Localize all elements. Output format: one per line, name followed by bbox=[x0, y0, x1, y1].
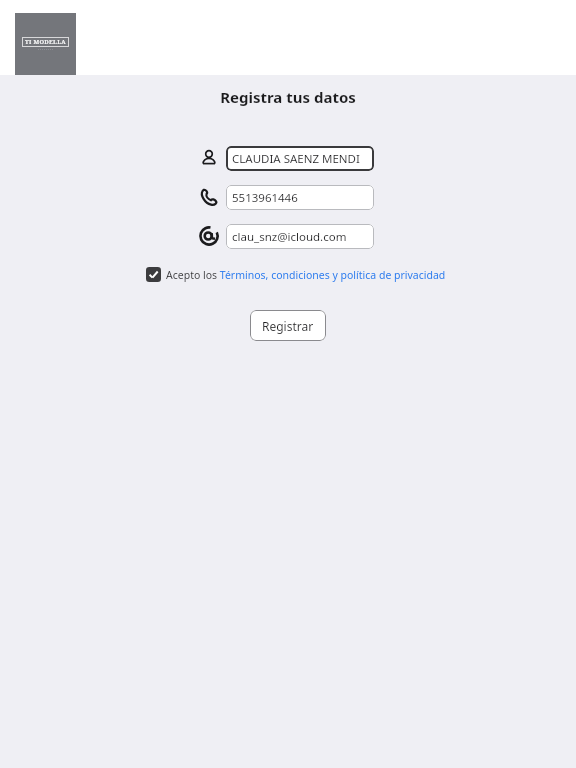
button[interactable]: Field icon bbox=[196, 223, 222, 249]
staticText: TI MODELLA bbox=[25, 38, 66, 46]
staticText: · · · · · · · · bbox=[38, 48, 53, 52]
button[interactable]: Field icon bbox=[196, 145, 222, 171]
button[interactable]: clau_snz@icloud.com bbox=[226, 224, 374, 249]
button[interactable]: Field icon bbox=[196, 184, 222, 210]
staticText: CLAUDIA SAENZ MENDI bbox=[232, 151, 360, 167]
staticText: Registra tus datos bbox=[0, 87, 576, 107]
button[interactable]: Registrar bbox=[250, 310, 326, 341]
staticText: Acepto los Términos, condiciones y polít… bbox=[166, 268, 446, 282]
button[interactable]: CLAUDIA SAENZ MENDI bbox=[226, 146, 374, 171]
staticText: Registrar bbox=[262, 318, 314, 334]
button[interactable]: Ti Modella logo bbox=[15, 13, 76, 75]
staticText: 5513961446 bbox=[232, 190, 298, 206]
button[interactable]: Acepto los Términos, condiciones y polít… bbox=[166, 268, 446, 282]
staticText: clau_snz@icloud.com bbox=[232, 229, 347, 245]
button[interactable]: 5513961446 bbox=[226, 185, 374, 210]
button[interactable]: Acepto los terminos checkbox bbox=[146, 267, 161, 282]
